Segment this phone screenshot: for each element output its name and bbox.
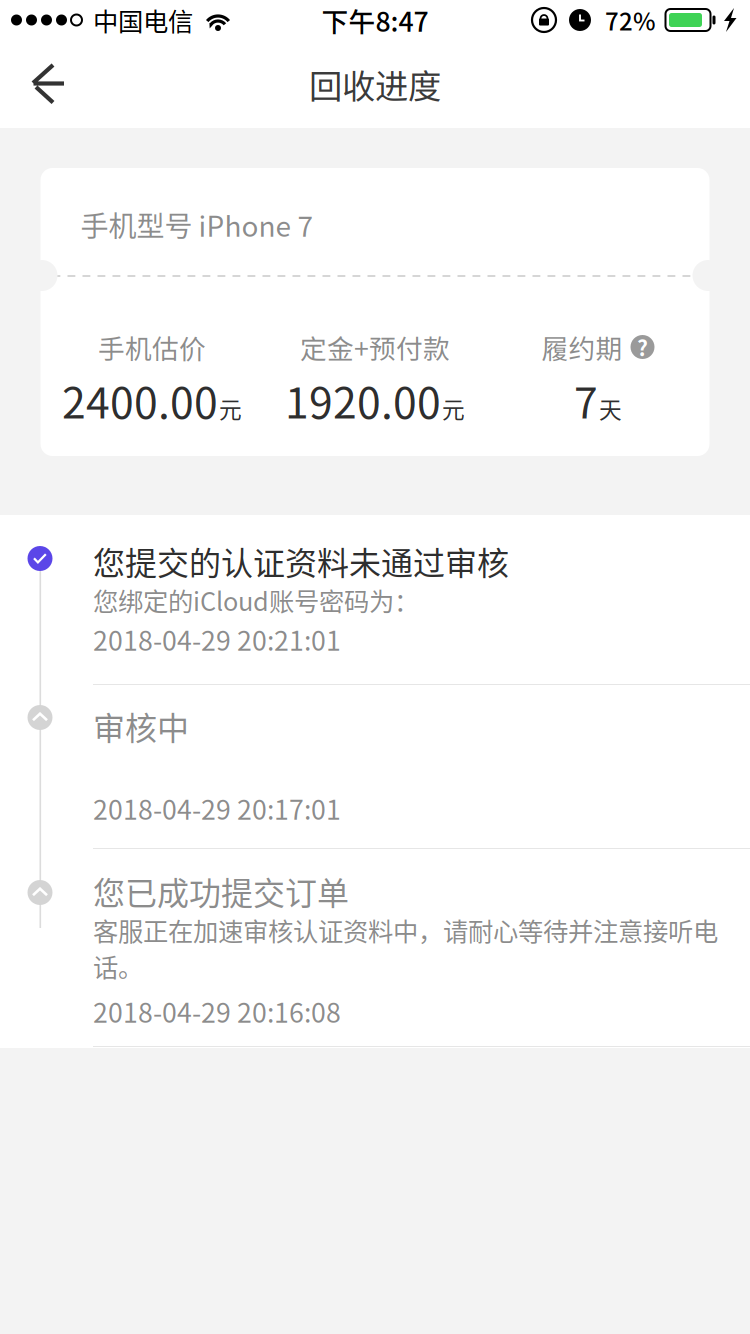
staticText: 72% — [605, 3, 656, 37]
button[interactable]: Back — [0, 41, 90, 126]
staticText: ? — [637, 332, 648, 362]
staticText: 您已成功提交订单 — [93, 868, 349, 914]
staticText: 您提交的认证资料未通过审核 — [93, 538, 509, 584]
staticText: 元 — [219, 392, 242, 425]
staticText: 定金+预付款 — [300, 328, 450, 366]
staticText: 2018-04-29 20:21:01 — [93, 620, 341, 658]
staticText: 审核中 — [93, 703, 189, 749]
staticText: 下午8:47 — [321, 1, 428, 39]
staticText: 2018-04-29 20:17:01 — [93, 789, 341, 827]
staticText: 履约期 — [541, 328, 622, 366]
staticText: 手机型号 iPhone 7 — [80, 204, 313, 245]
staticText: 话。 — [93, 948, 143, 984]
staticText: 7 — [574, 369, 598, 431]
staticText: 天 — [599, 392, 622, 425]
staticText: 2400.00 — [62, 369, 218, 431]
staticText: 您绑定的iCloud账号密码为： — [93, 582, 419, 618]
staticText: 元 — [442, 392, 465, 425]
staticText: 手机估价 — [98, 328, 206, 366]
staticText: 2018-04-29 20:16:08 — [93, 992, 341, 1030]
staticText: 中国电信 — [93, 2, 193, 38]
staticText: 1920.00 — [285, 369, 441, 431]
staticText: 回收进度 — [309, 60, 441, 108]
staticText: 客服正在加速审核认证资料中，请耐心等待并注意接听电 — [93, 912, 718, 948]
